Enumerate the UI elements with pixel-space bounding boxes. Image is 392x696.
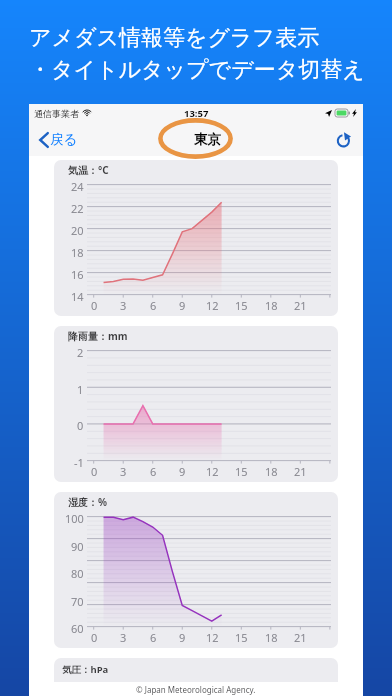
staticText: 12 (206, 298, 219, 313)
staticText: 16 (71, 267, 84, 282)
staticText: 90 (71, 539, 84, 554)
staticText: ・タイトルタップでデータ切替え (29, 56, 365, 84)
button[interactable]: 東京 (178, 126, 237, 153)
staticText: 0 (91, 630, 98, 645)
staticText: 9 (179, 298, 186, 313)
staticText: 3 (120, 630, 127, 645)
staticText: 21 (294, 298, 307, 313)
staticText: 通信事業者 (34, 108, 79, 119)
staticText: 24 (71, 179, 84, 194)
staticText: 9 (179, 630, 186, 645)
staticText: © Japan Meteorological Agency. (136, 684, 256, 695)
staticText: 13:57 (184, 107, 209, 120)
staticText: 0 (91, 464, 98, 479)
staticText: 12 (206, 464, 219, 479)
staticText: 1 (77, 382, 84, 397)
staticText: -1 (74, 455, 84, 470)
staticText: 湿度：% (68, 495, 108, 509)
staticText: 0 (77, 418, 84, 433)
staticText: 6 (150, 298, 157, 313)
staticText: 21 (294, 630, 307, 645)
staticText: 18 (265, 630, 278, 645)
staticText: 15 (235, 298, 248, 313)
staticText: 70 (71, 594, 84, 609)
staticText: 12 (206, 630, 219, 645)
staticText: 14 (71, 289, 84, 304)
staticText: アメダス情報等をグラフ表示 (29, 24, 320, 52)
staticText: 9 (179, 464, 186, 479)
staticText: 80 (71, 566, 84, 581)
staticText: 21 (294, 464, 307, 479)
staticText: 戻る (50, 131, 78, 148)
staticText: 0 (91, 298, 98, 313)
staticText: 3 (120, 464, 127, 479)
staticText: 気圧：hPa (62, 663, 109, 676)
staticText: 気温：°C (68, 163, 109, 177)
button[interactable]: 降雨量：mm (54, 326, 338, 482)
button[interactable]: Refresh (333, 126, 355, 152)
staticText: 20 (71, 223, 84, 238)
button[interactable]: 戻る (35, 126, 82, 153)
staticText: 降雨量：mm (68, 329, 128, 343)
button[interactable]: 気圧：hPa (54, 658, 338, 682)
staticText: 15 (235, 464, 248, 479)
staticText: 100 (65, 511, 84, 526)
staticText: 60 (71, 621, 84, 636)
button[interactable]: 湿度：% (54, 492, 338, 648)
staticText: 15 (235, 630, 248, 645)
staticText: 18 (71, 245, 84, 260)
button[interactable]: 気温：°C (54, 160, 338, 316)
staticText: 6 (150, 630, 157, 645)
staticText: 3 (120, 298, 127, 313)
staticText: 22 (71, 201, 84, 216)
staticText: 18 (265, 464, 278, 479)
staticText: 6 (150, 464, 157, 479)
staticText: 2 (77, 345, 84, 360)
staticText: 18 (265, 298, 278, 313)
staticText: 東京 (194, 131, 221, 148)
